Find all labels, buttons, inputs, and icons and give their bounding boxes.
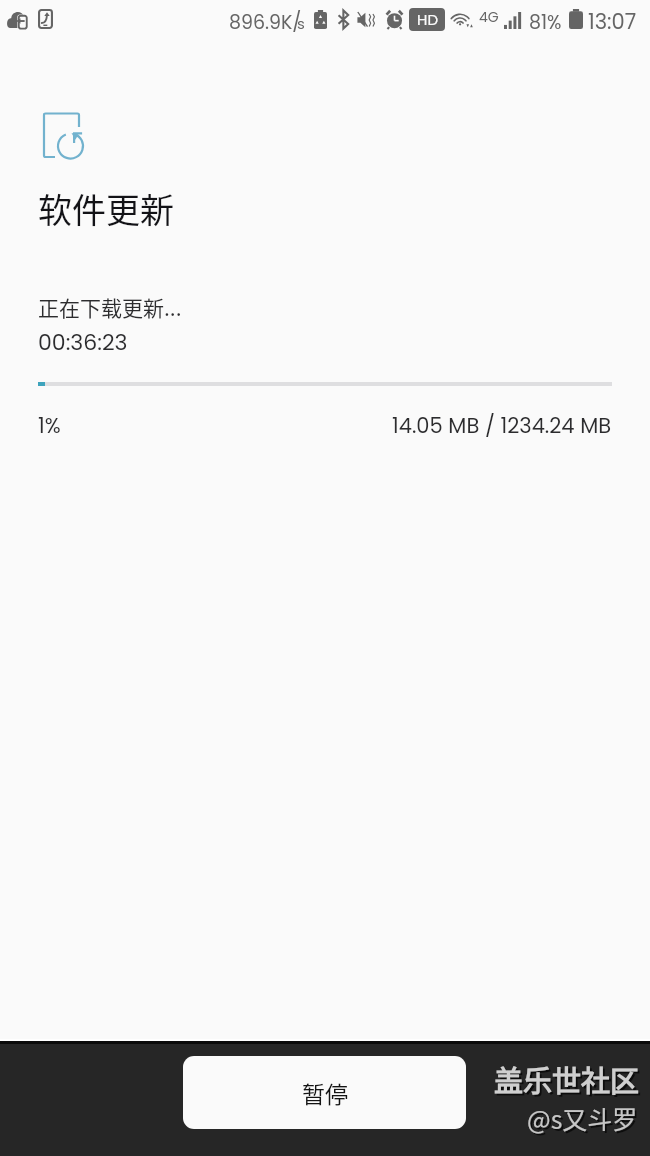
staticText: @s又斗罗 (527, 1100, 638, 1136)
staticText: 4G (479, 7, 499, 27)
button[interactable]: 暂停 (183, 1056, 466, 1129)
staticText: 正在下载更新... (38, 292, 182, 322)
staticText: 13:07 (588, 7, 637, 36)
staticText: 81% (529, 9, 562, 36)
staticText: 896.9K/ (229, 9, 302, 36)
staticText: 00:36:23 (38, 327, 128, 358)
staticText: 1% (38, 411, 61, 440)
staticText: HD (417, 9, 438, 30)
staticText: 盖乐世社区 (496, 1060, 642, 1102)
button[interactable]: Software update (38, 104, 94, 160)
staticText: 盖乐世社区 (494, 1058, 640, 1100)
staticText: s (297, 13, 305, 34)
staticText: 暂停 (302, 1076, 348, 1109)
staticText: 14.05 MB / 1234.24 MB (392, 411, 612, 440)
staticText: 软件更新 (38, 184, 174, 233)
staticText: @s又斗罗 (529, 1102, 640, 1138)
